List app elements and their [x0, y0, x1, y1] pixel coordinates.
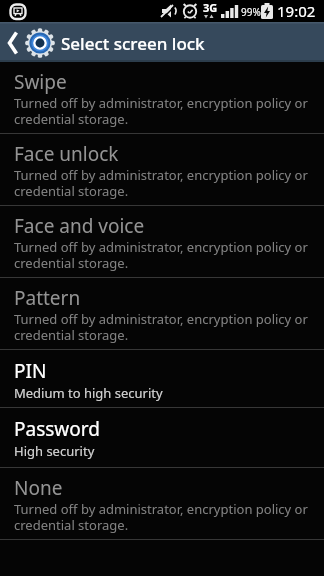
staticText: High security — [14, 442, 95, 460]
button[interactable]: Face unlock — [0, 134, 324, 205]
button[interactable]: Swipe — [0, 62, 324, 133]
staticText: Turned off by administrator, encryption … — [14, 238, 308, 271]
staticText: None — [14, 475, 63, 501]
staticText: Turned off by administrator, encryption … — [14, 166, 308, 199]
staticText: PIN — [14, 358, 47, 384]
staticText: 3G — [203, 0, 218, 15]
button[interactable]: Select screen lock — [0, 22, 324, 62]
staticText: Medium to high security — [14, 384, 163, 402]
button[interactable]: PIN — [0, 350, 324, 407]
staticText: 99% — [241, 5, 261, 19]
staticText: Swipe — [14, 69, 67, 95]
button[interactable]: Pattern — [0, 278, 324, 349]
staticText: 19:02 — [277, 1, 316, 21]
staticText: Face and voice — [14, 213, 145, 239]
staticText: Turned off by administrator, encryption … — [14, 500, 308, 533]
button[interactable]: Password — [0, 408, 324, 467]
staticText: Select screen lock — [61, 32, 205, 55]
staticText: Password — [14, 416, 100, 442]
staticText: Face unlock — [14, 141, 119, 167]
button[interactable]: None — [0, 468, 324, 539]
staticText: Turned off by administrator, encryption … — [14, 94, 308, 127]
staticText: Pattern — [14, 285, 81, 311]
staticText: Turned off by administrator, encryption … — [14, 310, 308, 343]
button[interactable]: Face and voice — [0, 206, 324, 277]
